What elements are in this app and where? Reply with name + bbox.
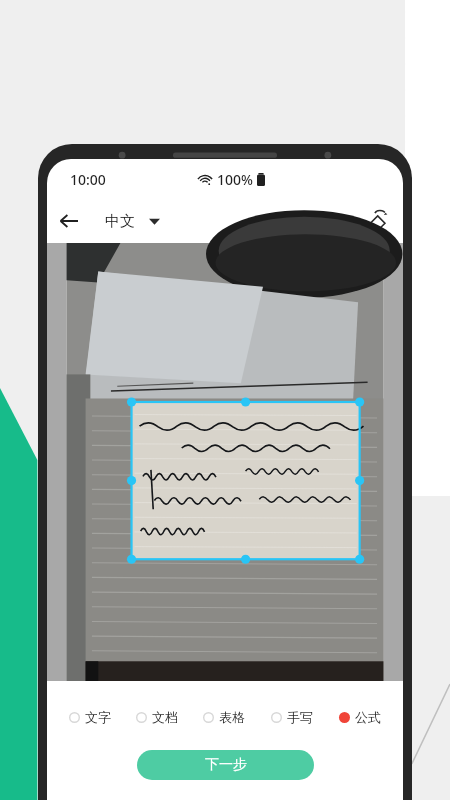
button[interactable]: 文字 — [69, 704, 111, 730]
button[interactable]: 法文 — [284, 206, 347, 237]
button[interactable]: 手写 — [271, 704, 313, 730]
staticText: 文档 — [152, 709, 178, 725]
staticText: 公式 — [355, 709, 381, 725]
staticText: 中文 — [105, 212, 135, 231]
staticText: 手写 — [287, 709, 313, 725]
button[interactable]: 下一步 — [137, 750, 314, 780]
button[interactable]: Back — [47, 199, 91, 243]
staticText: 100% — [217, 170, 253, 189]
staticText: 法文 — [288, 212, 318, 231]
staticText: 表格 — [219, 709, 245, 725]
staticText: 文字 — [85, 709, 111, 725]
button[interactable]: 公式 — [339, 704, 381, 730]
button[interactable]: Rotate — [359, 201, 399, 241]
button[interactable]: Photo crop area — [47, 243, 403, 681]
staticText: 下一步 — [205, 756, 247, 774]
button[interactable]: 表格 — [203, 704, 245, 730]
staticText: 10:00 — [70, 170, 106, 189]
button[interactable]: 中文 — [101, 206, 164, 237]
button[interactable]: 文档 — [136, 704, 178, 730]
